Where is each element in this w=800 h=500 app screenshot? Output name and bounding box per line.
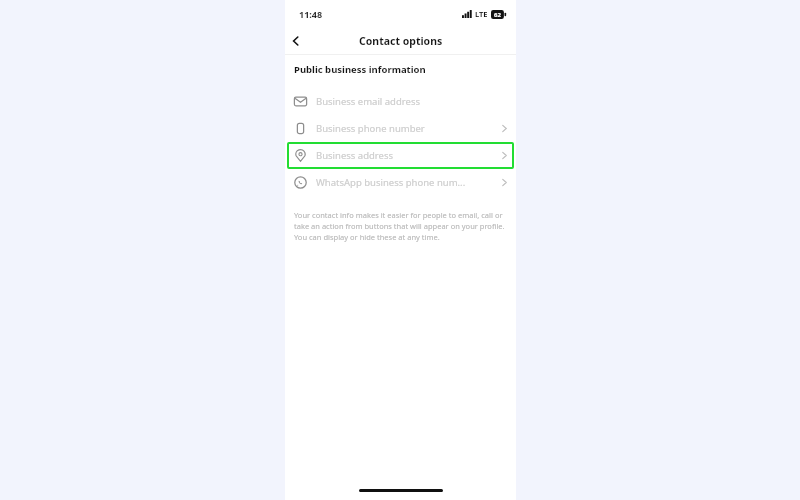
staticText: Business address bbox=[316, 149, 502, 162]
button[interactable]: WhatsApp business phone num... bbox=[287, 169, 514, 196]
staticText: 62 bbox=[494, 11, 501, 19]
staticText: WhatsApp business phone num... bbox=[316, 176, 502, 189]
staticText: Business email address bbox=[316, 95, 502, 108]
button[interactable]: Business address bbox=[287, 142, 514, 169]
staticText: Your contact info makes it easier for pe… bbox=[294, 210, 507, 242]
button[interactable]: Business phone number bbox=[287, 115, 514, 142]
button[interactable]: Business email address bbox=[287, 88, 514, 115]
staticText: LTE bbox=[475, 9, 488, 19]
staticText: 11:48 bbox=[299, 8, 323, 20]
staticText: Public business information bbox=[294, 63, 426, 76]
button[interactable]: Back bbox=[285, 30, 307, 52]
staticText: Business phone number bbox=[316, 122, 502, 135]
staticText: Contact options bbox=[359, 34, 443, 48]
